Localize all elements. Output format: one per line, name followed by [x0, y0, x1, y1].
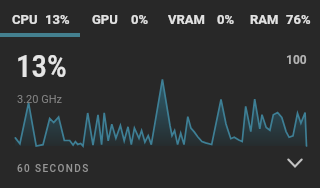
staticText: 60 SECONDS [17, 163, 90, 175]
staticText: 13% [16, 48, 67, 84]
button[interactable]: Expand chart [282, 149, 312, 179]
button[interactable]: CPU [0, 0, 80, 38]
staticText: 100 [286, 53, 307, 67]
button[interactable]: RAM [240, 0, 320, 38]
staticText: RAM [250, 12, 279, 27]
button[interactable]: 60 SECONDS [8, 154, 104, 180]
staticText: 13% [45, 12, 70, 27]
staticText: 76% [286, 12, 311, 27]
button[interactable]: VRAM [160, 0, 240, 38]
staticText: 3.20 GHz [17, 93, 62, 106]
staticText: CPU [12, 12, 38, 27]
staticText: VRAM [168, 12, 205, 27]
staticText: GPU [92, 12, 118, 27]
staticText: 0% [131, 12, 149, 27]
button[interactable]: GPU [80, 0, 160, 38]
staticText: 0% [217, 12, 235, 27]
